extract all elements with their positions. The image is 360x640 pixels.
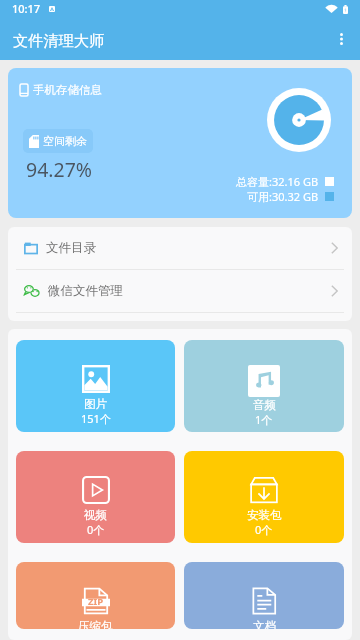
- staticText: 可用:30.32 GB: [247, 189, 319, 204]
- button[interactable]: 音频: [184, 340, 344, 432]
- staticText: 文件目录: [46, 240, 96, 256]
- staticText: 音频: [253, 398, 276, 412]
- staticText: 安装包: [247, 508, 282, 522]
- staticText: 0个: [255, 522, 273, 537]
- staticText: 视频: [84, 508, 107, 522]
- staticText: 151个: [81, 411, 111, 426]
- staticText: 压缩包: [78, 619, 113, 629]
- staticText: 0个: [87, 522, 105, 537]
- staticText: 文档: [253, 619, 276, 629]
- button[interactable]: 视频: [16, 451, 175, 543]
- staticText: 空间剩余: [43, 134, 87, 148]
- staticText: 总容量:32.16 GB: [236, 174, 319, 189]
- button[interactable]: 图片: [16, 340, 175, 432]
- button[interactable]: ZIP: [16, 562, 175, 629]
- staticText: ZIP: [88, 595, 104, 608]
- staticText: 微信文件管理: [48, 283, 123, 299]
- button[interactable]: 文档: [184, 562, 344, 629]
- button[interactable]: 文件目录: [8, 227, 352, 269]
- staticText: 1个: [255, 412, 273, 427]
- button[interactable]: 安装包: [184, 451, 344, 543]
- button[interactable]: 微信文件管理: [8, 270, 352, 312]
- button[interactable]: More options: [322, 20, 360, 58]
- staticText: 文件清理大师: [13, 31, 105, 50]
- staticText: 10:17: [12, 1, 41, 16]
- staticText: 手机存储信息: [33, 83, 102, 97]
- staticText: 图片: [84, 397, 107, 411]
- staticText: 94.27%: [26, 156, 93, 183]
